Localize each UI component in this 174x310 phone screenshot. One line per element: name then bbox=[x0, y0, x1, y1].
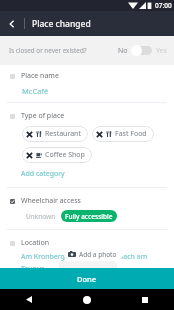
button[interactable]: Add a photo bbox=[64, 248, 123, 260]
staticText: Taunus bbox=[21, 264, 45, 268]
staticText: Add a photo bbox=[79, 250, 117, 259]
staticText: Restaurant bbox=[45, 129, 81, 139]
button[interactable]: Place name bbox=[0, 71, 174, 81]
button[interactable]: Recents bbox=[116, 289, 174, 310]
staticText: Am Kronberg 2, 65824 Schwalbach am bbox=[21, 252, 148, 262]
staticText: No bbox=[118, 46, 128, 56]
button[interactable]: Coffee Shop bbox=[22, 147, 92, 163]
staticText: Type of place bbox=[21, 111, 65, 121]
staticText: Unknown bbox=[26, 212, 56, 221]
button[interactable]: Location bbox=[0, 238, 174, 248]
button[interactable]: Is closed toggle bbox=[118, 45, 167, 56]
button[interactable]: Back bbox=[0, 12, 24, 36]
staticText: Wheelchair access bbox=[21, 196, 81, 206]
staticText: Fully accessible bbox=[65, 212, 113, 221]
staticText: Place name bbox=[21, 71, 59, 81]
button[interactable]: Type of place bbox=[0, 111, 174, 121]
button[interactable]: Restaurant bbox=[22, 126, 88, 142]
button[interactable]: Fully accessible bbox=[61, 210, 117, 222]
staticText: Yes bbox=[156, 46, 167, 56]
staticText: Is closed or never existed? bbox=[9, 46, 87, 55]
staticText: Done bbox=[77, 274, 97, 284]
button[interactable]: Home bbox=[58, 289, 116, 310]
button[interactable]: Back bbox=[0, 289, 58, 310]
staticText: Coffee Shop bbox=[45, 150, 85, 160]
staticText: 07:00 bbox=[155, 1, 172, 10]
staticText: Place changed bbox=[32, 18, 91, 30]
staticText: Location bbox=[21, 238, 50, 248]
button[interactable]: Wheelchair access bbox=[0, 196, 174, 206]
button[interactable]: Add category bbox=[21, 169, 65, 179]
staticText: Fast Food bbox=[115, 129, 147, 139]
button[interactable]: Done bbox=[0, 268, 174, 289]
button[interactable]: McCafé bbox=[22, 86, 49, 96]
button[interactable]: Fast Food bbox=[92, 126, 154, 142]
